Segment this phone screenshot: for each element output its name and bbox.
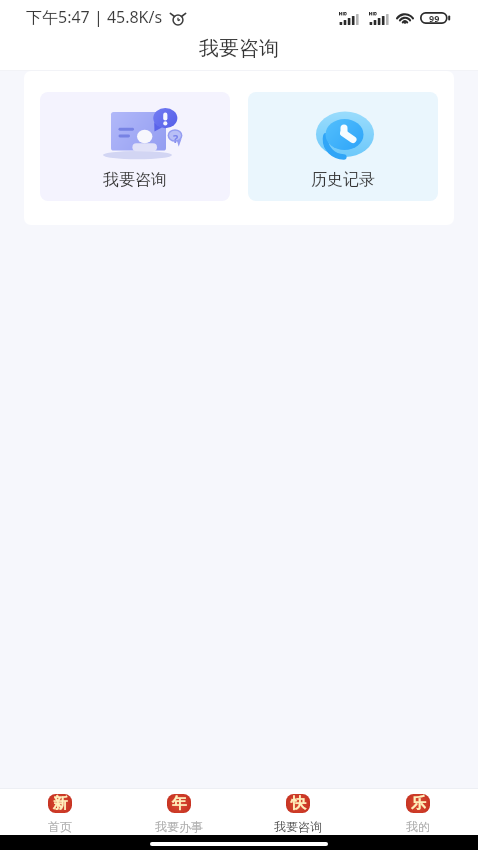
button[interactable]: ? <box>40 92 230 201</box>
button[interactable]: 新 <box>0 789 119 835</box>
button[interactable]: 年 <box>119 789 238 835</box>
staticText: 我要办事 <box>155 819 203 834</box>
staticText: 年 <box>172 794 187 813</box>
staticText: 快 <box>291 794 306 813</box>
staticText: 新 <box>53 794 68 813</box>
staticText: 历史记录 <box>311 170 375 190</box>
staticText: 我要咨询 <box>274 819 322 834</box>
staticText: 99 <box>429 12 440 24</box>
button[interactable]: 快 <box>238 789 358 835</box>
staticText: 我的 <box>406 819 430 834</box>
staticText: 我要咨询 <box>199 36 279 61</box>
button[interactable]: 历史记录 <box>248 92 438 201</box>
staticText: 乐 <box>411 794 426 813</box>
staticText: 下午5:47 | 45.8K/s <box>26 6 163 28</box>
staticText: ? <box>173 131 179 146</box>
staticText: 我要咨询 <box>103 170 167 190</box>
button[interactable]: 乐 <box>358 789 478 835</box>
staticText: 首页 <box>48 819 72 834</box>
